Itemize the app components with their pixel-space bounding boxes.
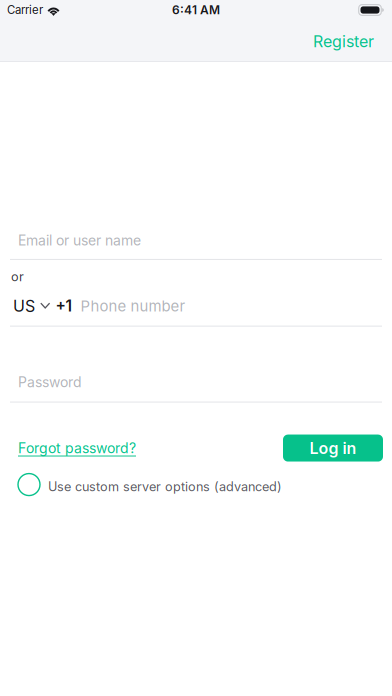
staticText: Register [313, 32, 374, 51]
staticText: Forgot password? [18, 440, 136, 456]
button[interactable]: Register [304, 24, 383, 57]
staticText: Log in [309, 438, 356, 458]
staticText: 6:41 AM [172, 3, 220, 17]
button[interactable]: US [13, 296, 50, 316]
button[interactable]: Forgot password? [18, 440, 136, 456]
button[interactable]: Use custom server options (advanced) [18, 474, 392, 496]
staticText: Email or user name [18, 232, 141, 249]
staticText: Carrier [7, 3, 43, 17]
staticText: or [11, 269, 24, 284]
staticText: +1 [55, 297, 72, 315]
button[interactable]: Log in [283, 435, 383, 462]
staticText: US [13, 296, 35, 316]
staticText: Use custom server options (advanced) [48, 479, 282, 494]
staticText: Phone number [80, 297, 185, 315]
staticText: Password [18, 374, 82, 390]
